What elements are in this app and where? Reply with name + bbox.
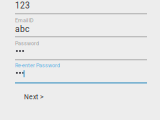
staticText: Email ID	[15, 17, 34, 24]
staticText: Password	[15, 40, 39, 47]
button[interactable]: Next >	[15, 88, 52, 107]
staticText: 123	[15, 1, 30, 11]
staticText: Re-enter Password	[15, 62, 60, 69]
staticText: Next >	[24, 93, 43, 101]
staticText: abc	[15, 24, 29, 34]
